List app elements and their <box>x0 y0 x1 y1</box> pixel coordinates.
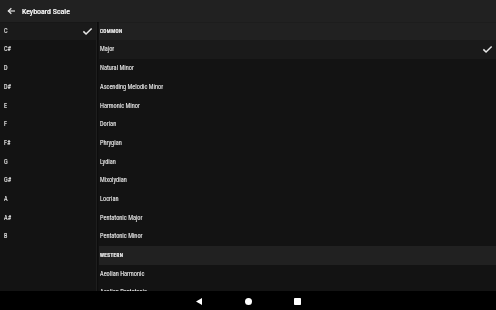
staticText: F# <box>4 139 11 146</box>
button[interactable]: E <box>0 97 96 116</box>
button[interactable]: Pentatonic Minor <box>96 227 496 246</box>
button[interactable]: COMMON <box>96 22 496 41</box>
staticText: D# <box>4 83 12 90</box>
staticText: Harmonic Minor <box>100 102 140 109</box>
staticText: Keyboard Scale <box>22 7 70 16</box>
staticText: C# <box>4 45 12 52</box>
button[interactable]: Dorian <box>96 115 496 134</box>
button[interactable]: Locrian <box>96 190 496 209</box>
button[interactable]: Phrygian <box>96 134 496 153</box>
button[interactable]: Back <box>191 293 207 309</box>
staticText: A# <box>4 214 12 221</box>
staticText: Pentatonic Major <box>100 214 143 221</box>
button[interactable]: D <box>0 59 96 78</box>
staticText: Ascending Melodic Minor <box>100 83 164 90</box>
staticText: B <box>4 232 8 239</box>
button[interactable]: F <box>0 115 96 134</box>
button[interactable]: Pentatonic Major <box>96 209 496 228</box>
button[interactable]: C# <box>0 40 96 59</box>
staticText: Aeolian Pentatonic <box>100 288 147 295</box>
button[interactable]: G# <box>0 171 96 190</box>
button[interactable]: WESTERN <box>96 246 496 265</box>
staticText: Major <box>100 45 115 52</box>
button[interactable]: Recent apps <box>289 293 305 309</box>
staticText: D <box>4 64 8 71</box>
button[interactable]: Natural Minor <box>96 59 496 78</box>
button[interactable]: Harmonic Minor <box>96 97 496 116</box>
button[interactable]: C <box>0 22 96 41</box>
button[interactable]: Mixolydian <box>96 171 496 190</box>
button[interactable]: Aeolian Harmonic <box>96 265 496 284</box>
button[interactable]: G <box>0 153 96 172</box>
staticText: Lydian <box>100 158 116 165</box>
button[interactable]: Navigate up <box>3 3 19 19</box>
button[interactable]: A <box>0 190 96 209</box>
staticText: G <box>4 158 8 165</box>
button[interactable]: Aeolian Pentatonic <box>96 283 496 302</box>
staticText: Pentatonic Minor <box>100 232 143 239</box>
staticText: C <box>4 27 8 34</box>
staticText: G# <box>4 176 12 183</box>
button[interactable]: Major <box>96 40 496 59</box>
staticText: Natural Minor <box>100 64 134 71</box>
button[interactable]: Ascending Melodic Minor <box>96 78 496 97</box>
staticText: WESTERN <box>100 252 124 258</box>
staticText: Aeolian Harmonic <box>100 270 145 277</box>
button[interactable]: B <box>0 227 96 246</box>
button[interactable]: A# <box>0 209 96 228</box>
button[interactable]: Aeolian Dominant <box>96 302 496 310</box>
staticText: Dorian <box>100 120 117 127</box>
staticText: COMMON <box>100 28 123 34</box>
staticText: Locrian <box>100 195 119 202</box>
staticText: A <box>4 195 8 202</box>
staticText: Mixolydian <box>100 176 127 183</box>
button[interactable]: Lydian <box>96 153 496 172</box>
staticText: Phrygian <box>100 139 122 146</box>
button[interactable]: D# <box>0 78 96 97</box>
staticText: F <box>4 120 8 127</box>
button[interactable]: F# <box>0 134 96 153</box>
button[interactable]: Home <box>240 293 256 309</box>
staticText: E <box>4 102 8 109</box>
